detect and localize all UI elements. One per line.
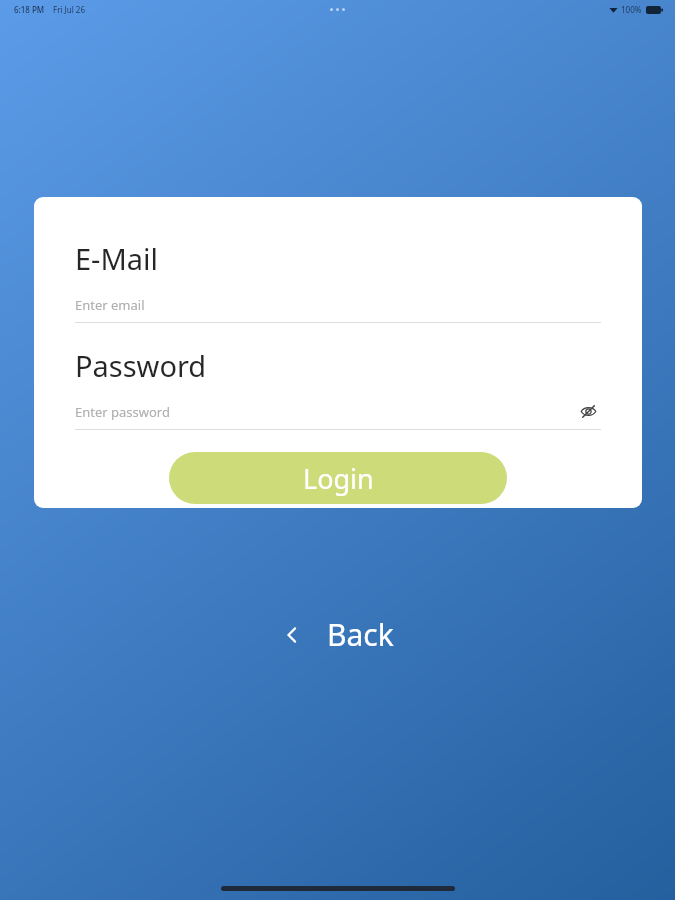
staticText: Login — [303, 460, 374, 497]
other: Back — [281, 624, 303, 646]
button[interactable]: Show password — [575, 401, 601, 422]
staticText: 6:18 PM — [14, 4, 45, 15]
staticText: Password — [75, 346, 207, 385]
staticText: E-Mail — [75, 239, 158, 278]
staticText: Fri Jul 26 — [53, 4, 86, 15]
button[interactable]: Enter email — [75, 294, 601, 315]
button[interactable]: Enter password — [75, 401, 601, 422]
staticText: Enter email — [75, 296, 145, 314]
staticText: 100% — [621, 4, 642, 15]
staticText: Enter password — [75, 403, 170, 421]
staticText: Back — [327, 614, 394, 655]
button[interactable]: Back — [269, 606, 406, 663]
button[interactable]: Login — [169, 452, 507, 504]
